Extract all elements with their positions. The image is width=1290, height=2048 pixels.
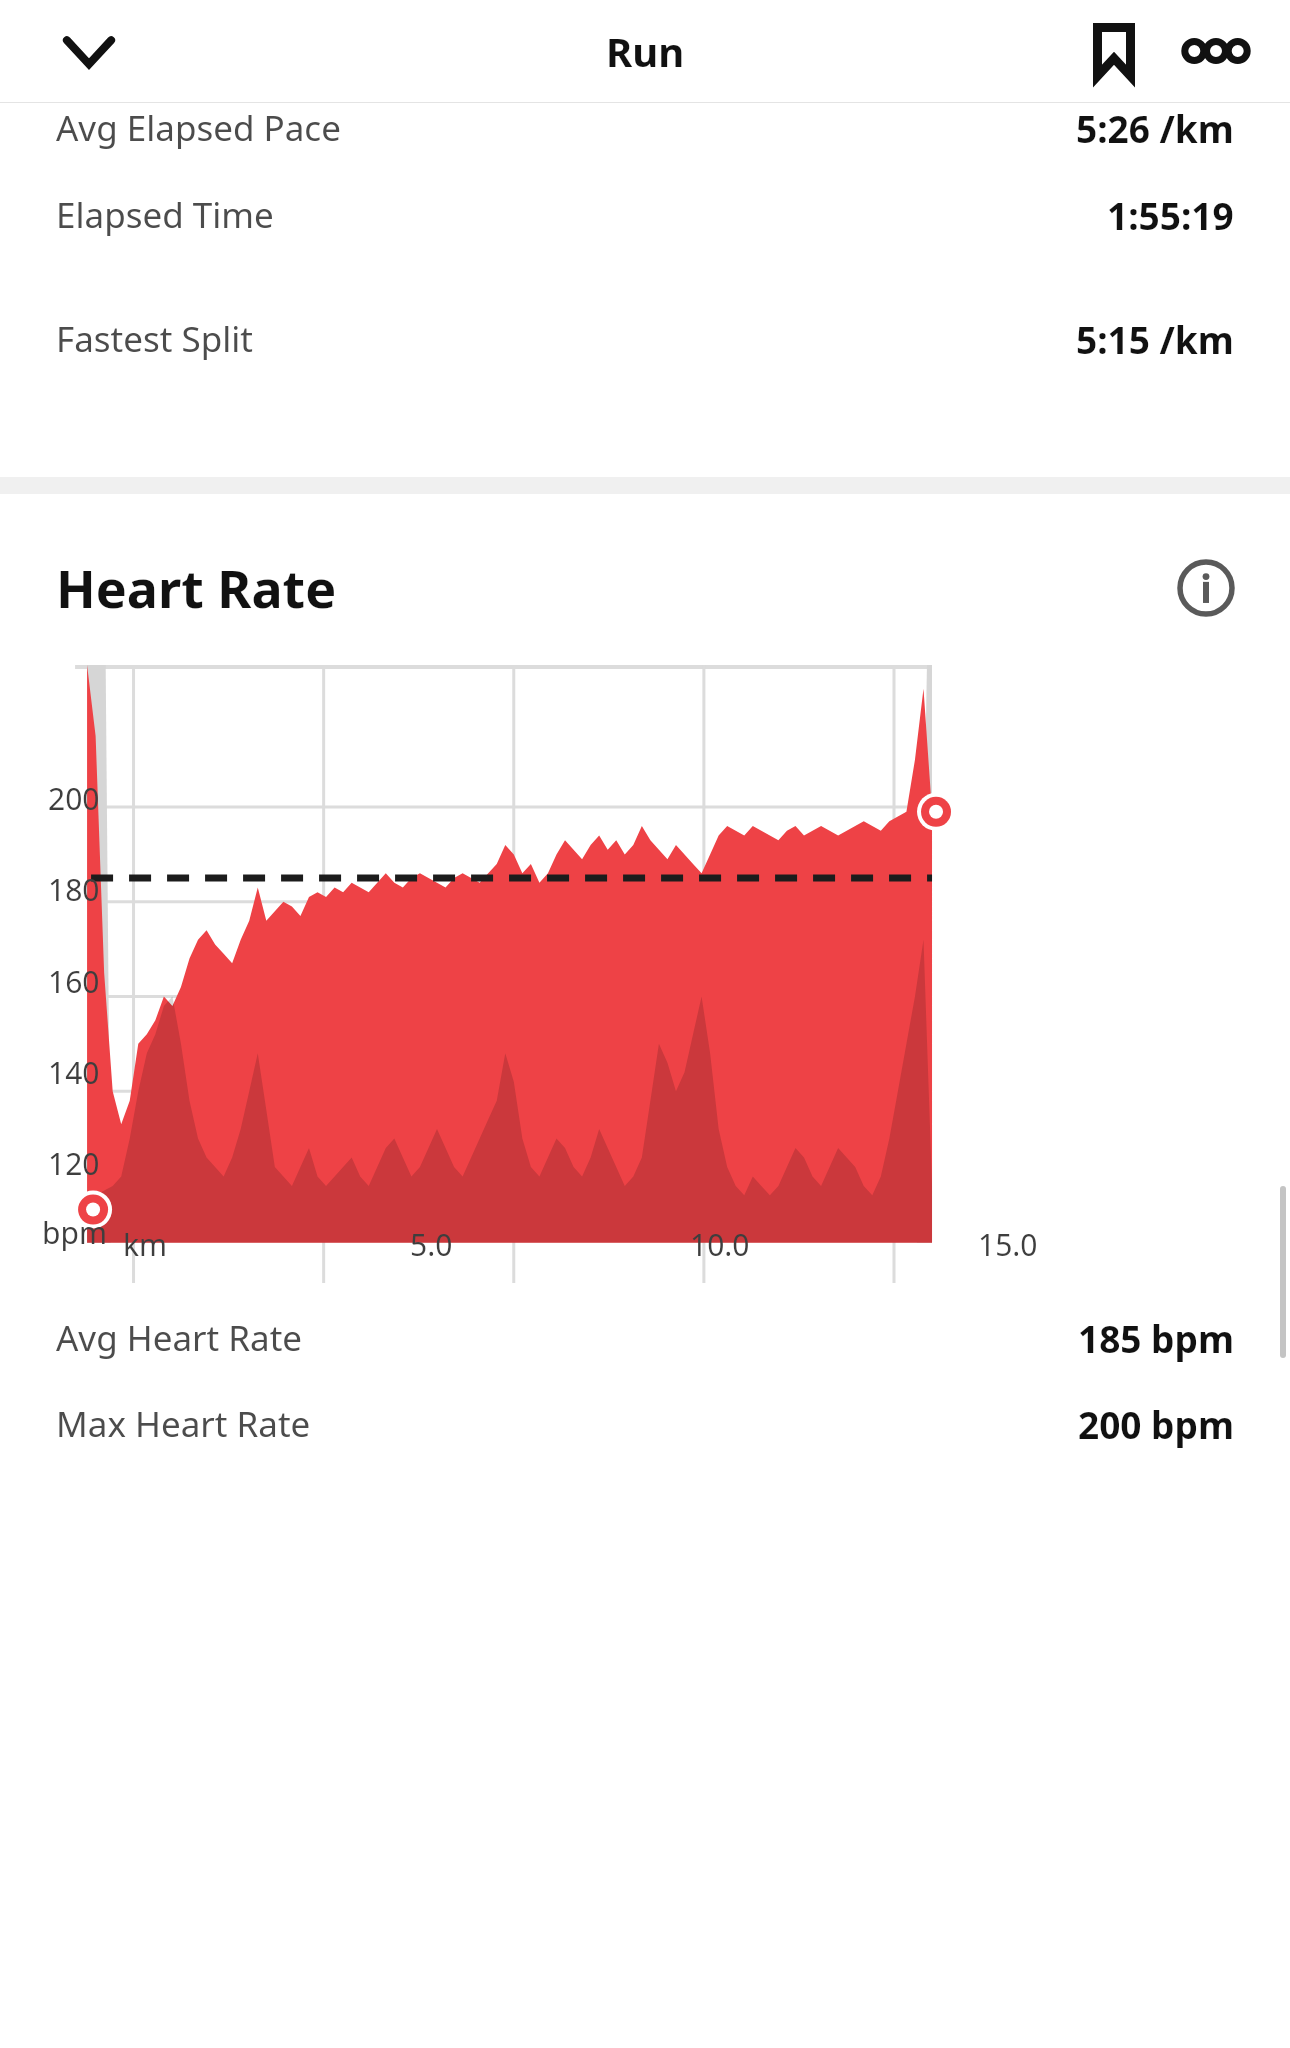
button[interactable]: More options [1176,11,1256,91]
staticText: 15.0 [978,1224,1038,1265]
staticText: Max Heart Rate [56,1400,311,1448]
staticText: 200 [48,778,100,819]
staticText: 140 [48,1052,100,1093]
staticText: km [123,1224,168,1265]
button[interactable]: Avg Elapsed Pace [0,103,1290,153]
staticText: 180 [48,869,100,910]
staticText: bpm [42,1212,107,1253]
staticText: Run [606,24,685,78]
staticText: 200 bpm [1078,1399,1234,1449]
staticText: Avg Heart Rate [56,1314,303,1362]
button[interactable]: Bookmark [1074,11,1154,91]
button[interactable]: Avg Heart Rate [0,1313,1290,1363]
staticText: Fastest Split [56,315,253,363]
staticText: 10.0 [690,1224,750,1265]
button[interactable]: Info [1172,554,1240,622]
staticText: 5:15 /km [1076,314,1234,364]
staticText: Avg Elapsed Pace [56,104,341,152]
button[interactable]: Collapse [50,12,128,90]
button[interactable]: Elapsed Time [0,153,1290,277]
staticText: 185 bpm [1078,1313,1234,1363]
staticText: Elapsed Time [56,191,274,239]
staticText: 120 [48,1143,100,1184]
staticText: Heart Rate [56,552,337,623]
staticText: 5:26 /km [1076,103,1234,153]
button[interactable]: Max Heart Rate [0,1363,1290,1485]
button[interactable]: Fastest Split [0,277,1290,401]
staticText: 5.0 [410,1224,453,1265]
staticText: 160 [48,961,100,1002]
staticText: 1:55:19 [1107,190,1234,240]
